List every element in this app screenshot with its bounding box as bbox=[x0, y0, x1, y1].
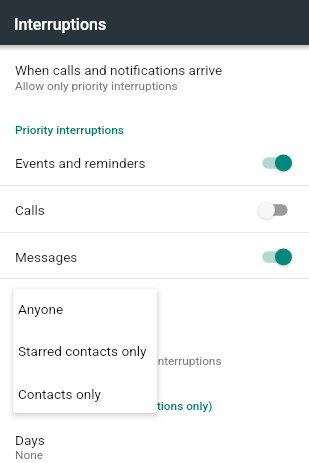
staticText: Interruptions bbox=[14, 15, 107, 34]
staticText: Allow only call and priority interruptio… bbox=[15, 354, 222, 368]
staticText: Contacts only bbox=[18, 386, 101, 402]
staticText: Allow only priority interruptions bbox=[15, 79, 178, 93]
staticText: None bbox=[15, 448, 43, 462]
staticText: Starred contacts only bbox=[18, 343, 147, 359]
button[interactable]: Contacts only bbox=[13, 374, 157, 413]
button[interactable]: Starred contacts only bbox=[13, 331, 157, 370]
staticText: Messages bbox=[15, 249, 78, 265]
staticText: Anyone bbox=[18, 301, 64, 317]
staticText: Priority interruptions bbox=[15, 123, 124, 137]
button[interactable]: Messages bbox=[0, 234, 309, 279]
staticText: Calls bbox=[15, 202, 45, 218]
button[interactable]: Events and reminders bbox=[0, 140, 309, 186]
button[interactable]: Days bbox=[0, 423, 309, 463]
staticText: Days bbox=[15, 432, 45, 448]
button[interactable]: Calls and messages bbox=[0, 328, 309, 377]
staticText: Events and reminders bbox=[15, 155, 146, 171]
button[interactable]: Calls bbox=[0, 187, 309, 233]
button[interactable]: When calls and notifications arrive bbox=[0, 53, 309, 102]
staticText: When calls and notifications arrive bbox=[15, 62, 223, 78]
staticText: Downtime (priority interruptions only) bbox=[15, 399, 213, 413]
button[interactable]: Anyone bbox=[13, 289, 157, 328]
staticText: Calls and messages bbox=[15, 337, 137, 353]
